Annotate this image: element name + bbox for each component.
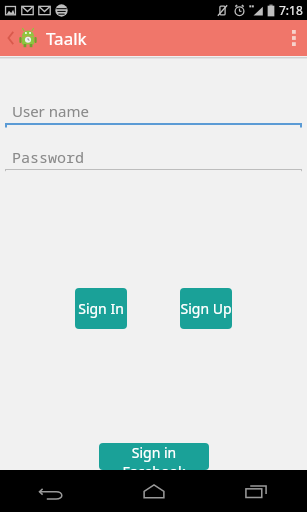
button[interactable]: More options (281, 20, 307, 56)
button[interactable]: User name field (5, 99, 302, 129)
button[interactable]: Sign In (75, 288, 127, 329)
button[interactable]: Back (0, 470, 103, 512)
staticText: Password (12, 147, 85, 167)
button[interactable]: Home (103, 470, 205, 512)
button[interactable]: Sign Up (180, 288, 232, 329)
button[interactable]: Recent apps (205, 470, 307, 512)
staticText: Taalk (46, 27, 87, 50)
button[interactable]: Sign in Facebook (99, 443, 209, 470)
staticText: Sign in Facebook (99, 443, 209, 470)
staticText: Sign In (78, 299, 124, 318)
button[interactable]: Navigate up (3, 20, 19, 56)
button[interactable]: Password field (5, 145, 302, 175)
staticText: 7:18 (279, 2, 303, 18)
staticText: Sign Up (180, 299, 232, 318)
staticText: User name (12, 101, 89, 121)
